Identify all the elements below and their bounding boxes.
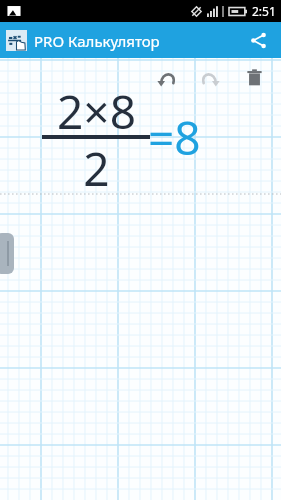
staticText: =8: [148, 106, 201, 169]
staticText: 2:51: [252, 3, 276, 19]
button[interactable]: Redo: [193, 60, 227, 94]
button[interactable]: Delete: [237, 60, 271, 94]
button[interactable]: Share: [243, 25, 273, 55]
button[interactable]: Undo: [149, 60, 183, 94]
staticText: 2×8: [57, 80, 136, 143]
button[interactable]: Open panel: [0, 233, 14, 274]
staticText: 2: [83, 137, 110, 200]
staticText: PRO Калькулятор: [34, 31, 160, 51]
